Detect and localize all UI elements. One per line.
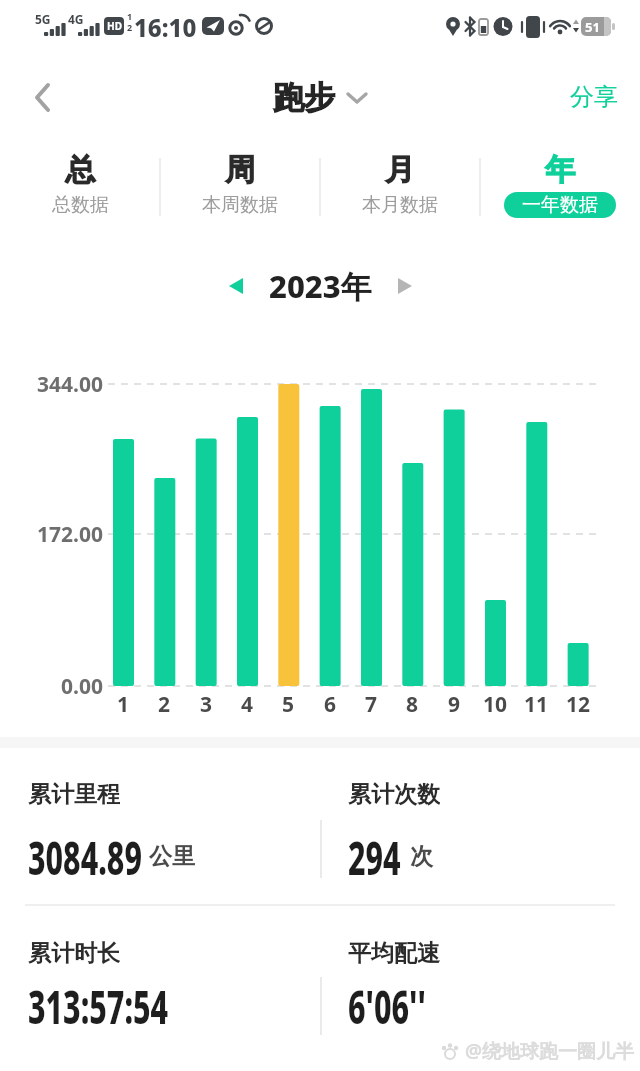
staticText: 次 xyxy=(410,842,433,871)
button[interactable] xyxy=(26,78,66,118)
staticText: 本周数据 xyxy=(202,193,278,217)
staticText: 5 xyxy=(282,690,295,716)
staticText: 总 xyxy=(65,151,95,189)
staticText: 年 xyxy=(545,151,575,189)
staticText: 公里 xyxy=(149,842,195,871)
staticText: 3084.89 xyxy=(28,826,142,878)
button[interactable] xyxy=(221,271,251,301)
staticText: 10 xyxy=(483,690,508,716)
staticText: 2023年 xyxy=(269,265,372,307)
staticText: 51 xyxy=(585,18,600,35)
staticText: 8 xyxy=(406,690,419,716)
button[interactable]: 周 xyxy=(160,148,320,228)
staticText: 2 xyxy=(158,690,171,716)
staticText: 总数据 xyxy=(52,193,109,217)
staticText: 172.00 xyxy=(37,520,103,548)
staticText: 4G xyxy=(68,11,84,26)
staticText: 本月数据 xyxy=(362,193,438,217)
button[interactable]: 月 xyxy=(320,148,480,228)
button[interactable] xyxy=(390,271,420,301)
button[interactable]: 总 xyxy=(0,148,160,228)
staticText: 周 xyxy=(225,151,255,189)
staticText: @绕地球跑一圈儿半 xyxy=(465,1038,635,1064)
staticText: 9 xyxy=(448,690,461,716)
staticText: 313:57:54 xyxy=(28,975,169,1027)
staticText: 累计时长 xyxy=(28,939,120,967)
staticText: 4 xyxy=(241,690,254,716)
staticText: 一年数据 xyxy=(522,193,598,217)
button[interactable]: 跑步 xyxy=(273,78,367,117)
button[interactable]: 年 xyxy=(480,148,640,228)
button[interactable]: 分享 xyxy=(538,79,618,115)
staticText: 累计次数 xyxy=(348,780,440,808)
staticText: 累计里程 xyxy=(28,780,120,808)
staticText: 12 xyxy=(566,690,591,716)
staticText: HD xyxy=(107,19,122,33)
staticText: 跑步 xyxy=(273,78,335,117)
staticText: 1 xyxy=(127,10,133,22)
staticText: 7 xyxy=(365,690,378,716)
staticText: 344.00 xyxy=(37,370,103,398)
staticText: 2 xyxy=(127,21,133,33)
staticText: 6'06'' xyxy=(348,975,426,1027)
staticText: 5G xyxy=(35,11,51,26)
staticText: 294 xyxy=(348,826,401,878)
staticText: 1 xyxy=(117,690,130,716)
staticText: 16:10 xyxy=(134,11,197,39)
staticText: 分享 xyxy=(570,82,618,112)
staticText: 11 xyxy=(524,690,549,716)
staticText: 6 xyxy=(324,690,337,716)
staticText: 平均配速 xyxy=(348,939,440,967)
staticText: 3 xyxy=(200,690,213,716)
staticText: 月 xyxy=(385,151,415,189)
staticText: 0.00 xyxy=(61,672,103,700)
